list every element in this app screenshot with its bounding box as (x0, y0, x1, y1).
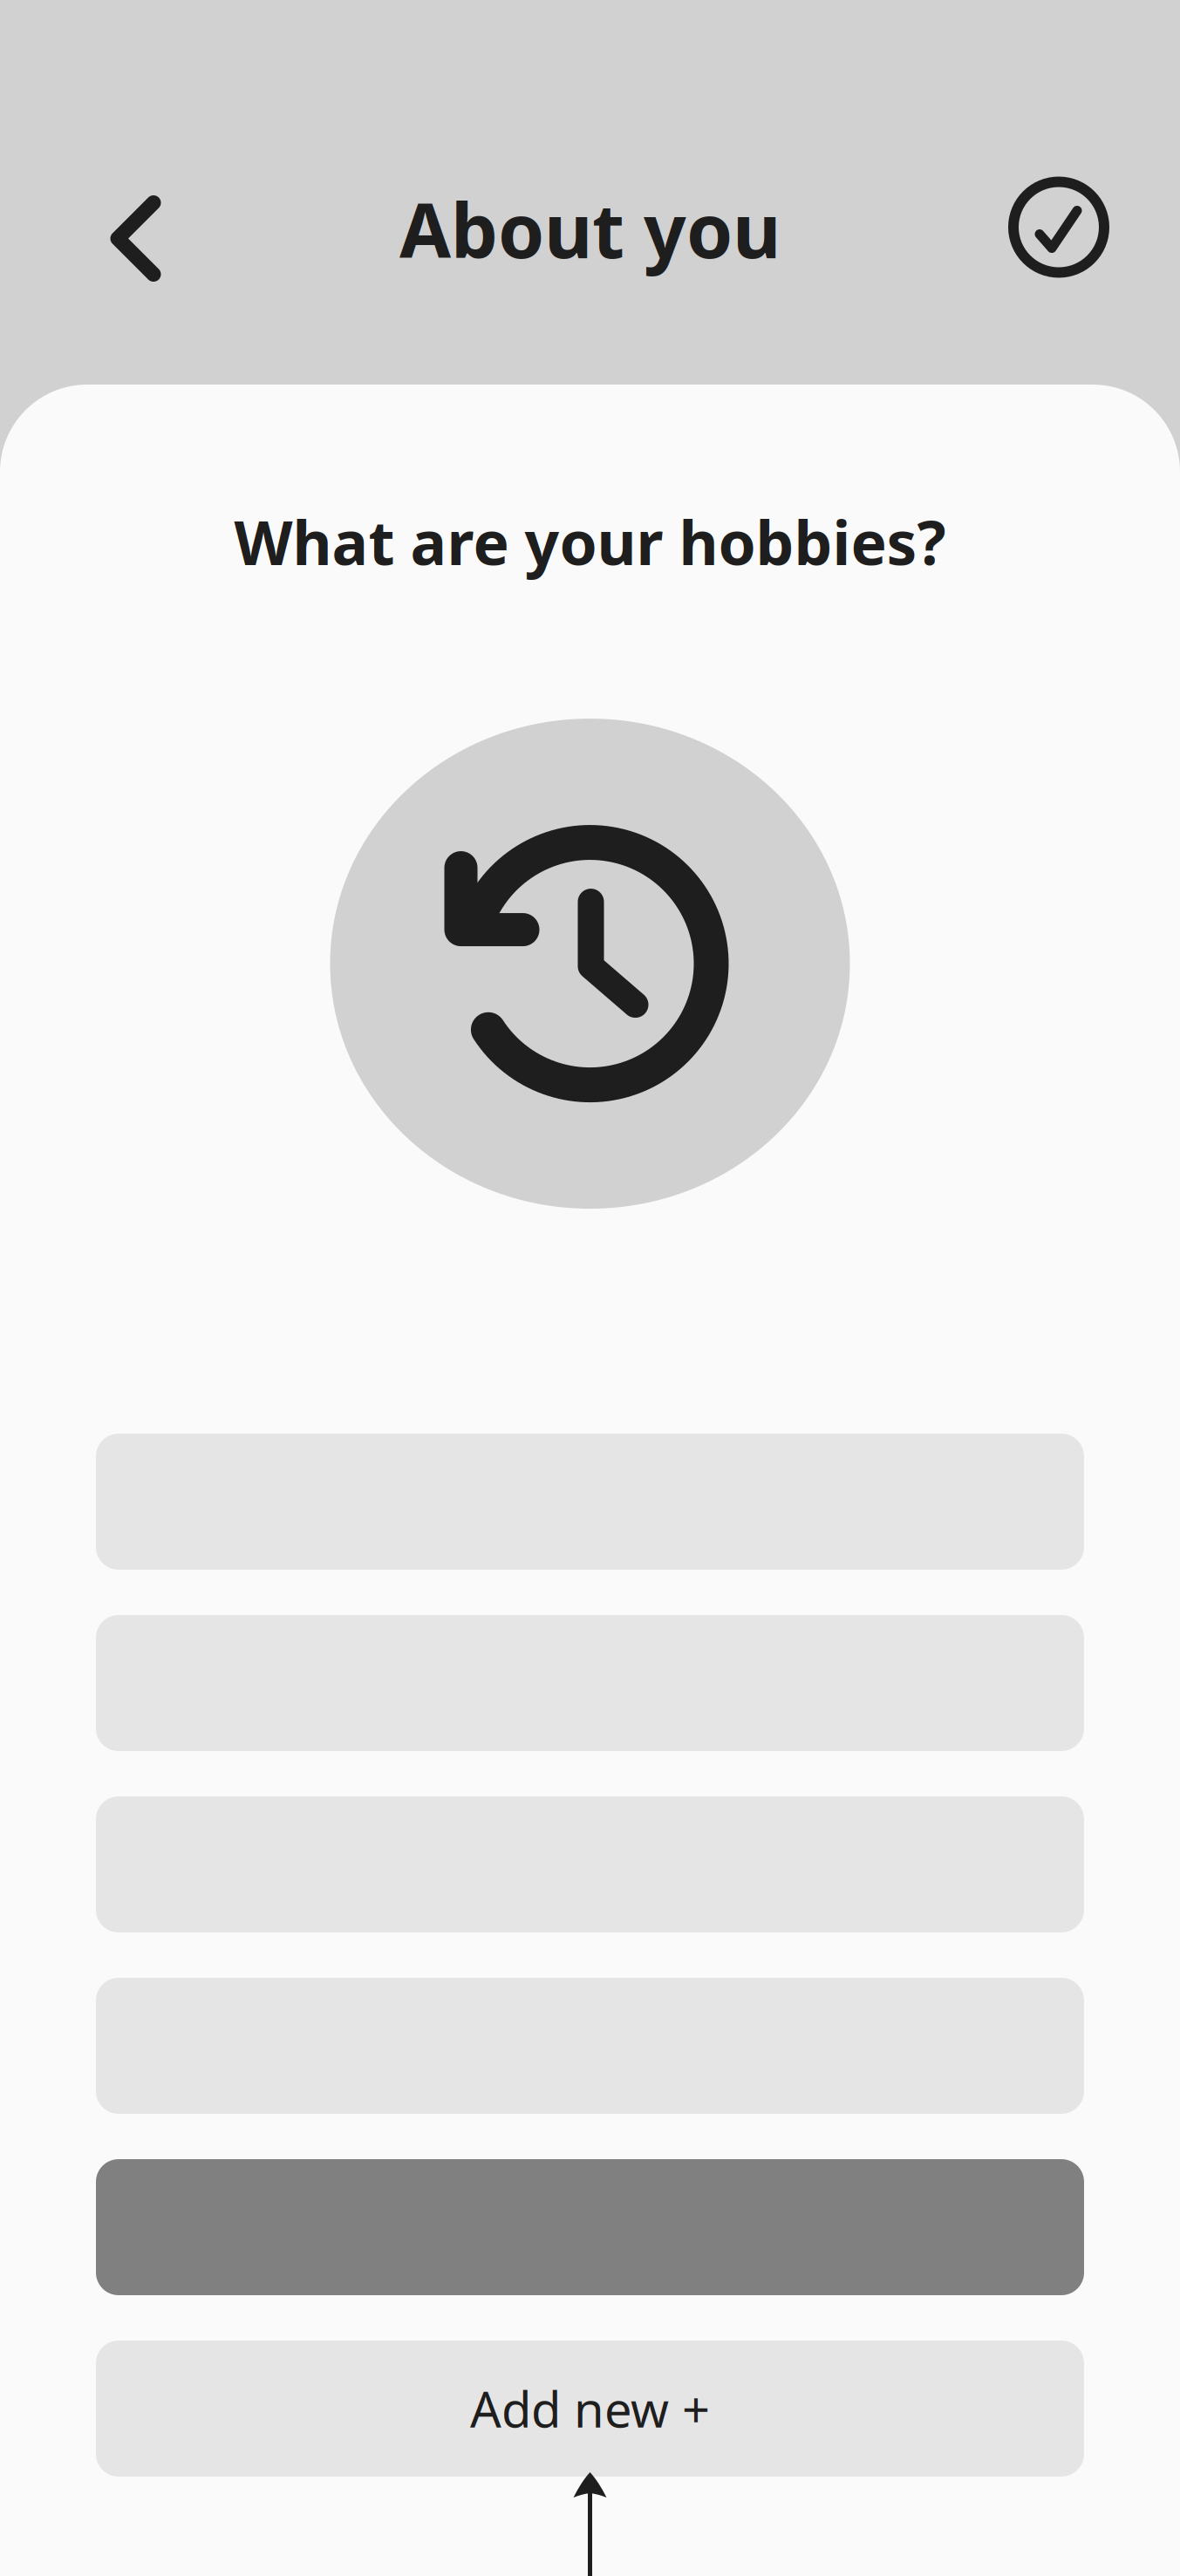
staticText: Add new + (470, 2376, 710, 2441)
button[interactable]: Add new + (96, 2341, 1084, 2477)
button[interactable]: Selected hobby (96, 2159, 1084, 2295)
button[interactable]: Back (78, 146, 191, 308)
staticText: About you (399, 180, 781, 279)
staticText: What are your hobbies? (234, 501, 946, 582)
button[interactable]: Done (995, 159, 1122, 295)
